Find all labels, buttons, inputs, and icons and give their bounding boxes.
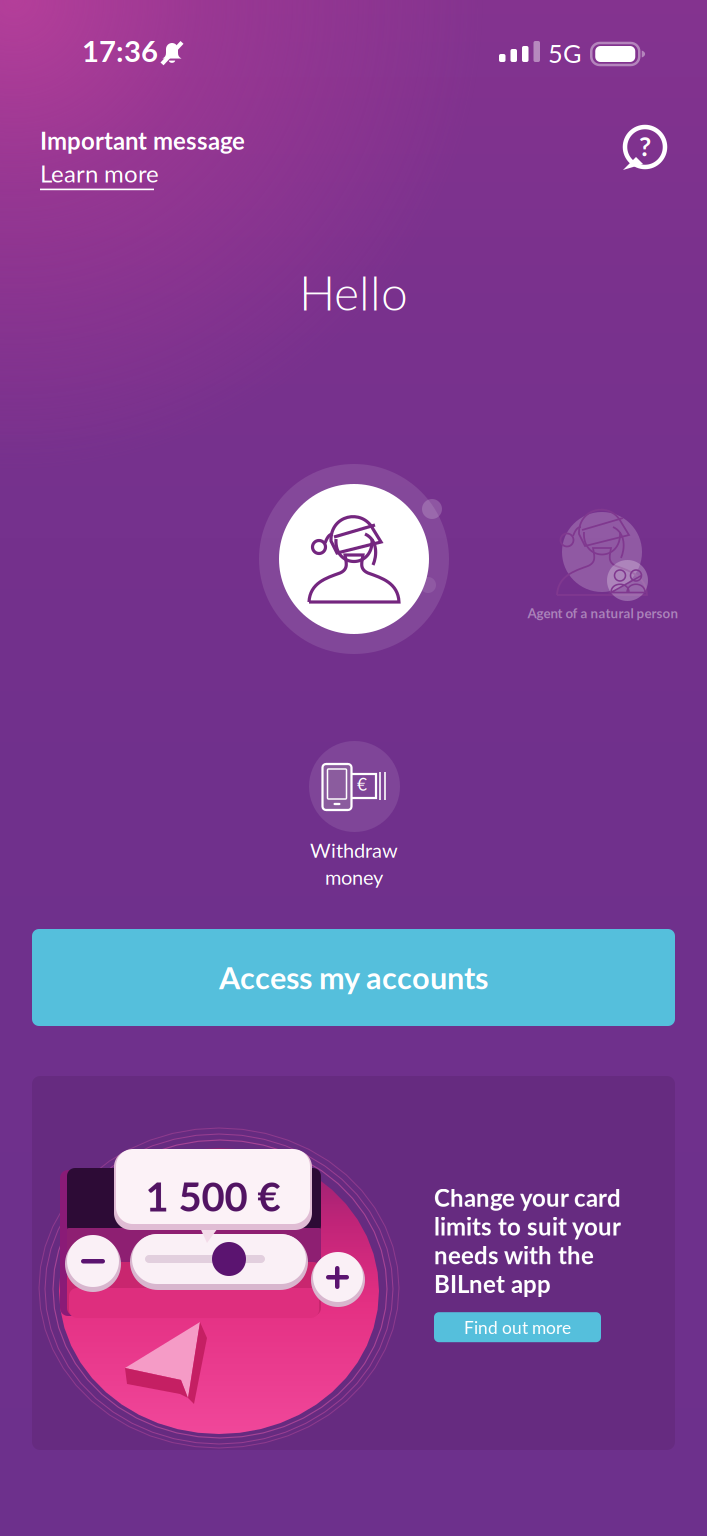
staticText: 5G <box>548 38 582 68</box>
staticText: 1 500 € <box>145 1172 280 1220</box>
staticText: limits to suit your <box>434 1212 621 1241</box>
button[interactable]: Personal profile <box>259 464 449 654</box>
staticText: € <box>357 774 367 794</box>
button[interactable]: Agent of a natural person <box>522 500 702 635</box>
staticText: Find out more <box>464 1317 571 1338</box>
button[interactable]: Important message <box>40 126 280 190</box>
staticText: 17:36 <box>82 33 158 68</box>
staticText: money <box>325 865 383 889</box>
staticText: Agent of a natural person <box>527 605 678 621</box>
staticText: needs with the <box>434 1241 594 1269</box>
staticText: BILnet app <box>434 1269 551 1298</box>
staticText: Important message <box>40 126 245 155</box>
staticText: Change your card <box>434 1183 621 1212</box>
button[interactable]: € <box>254 741 454 891</box>
staticText: Access my accounts <box>219 959 488 996</box>
staticText: ? <box>639 130 651 162</box>
button[interactable]: Help <box>621 126 669 174</box>
button[interactable]: 1 500 € <box>32 1076 675 1450</box>
staticText: Hello <box>299 263 408 321</box>
staticText: Withdraw <box>310 838 398 862</box>
staticText: Learn more <box>40 159 159 188</box>
button[interactable]: Access my accounts <box>32 929 675 1026</box>
